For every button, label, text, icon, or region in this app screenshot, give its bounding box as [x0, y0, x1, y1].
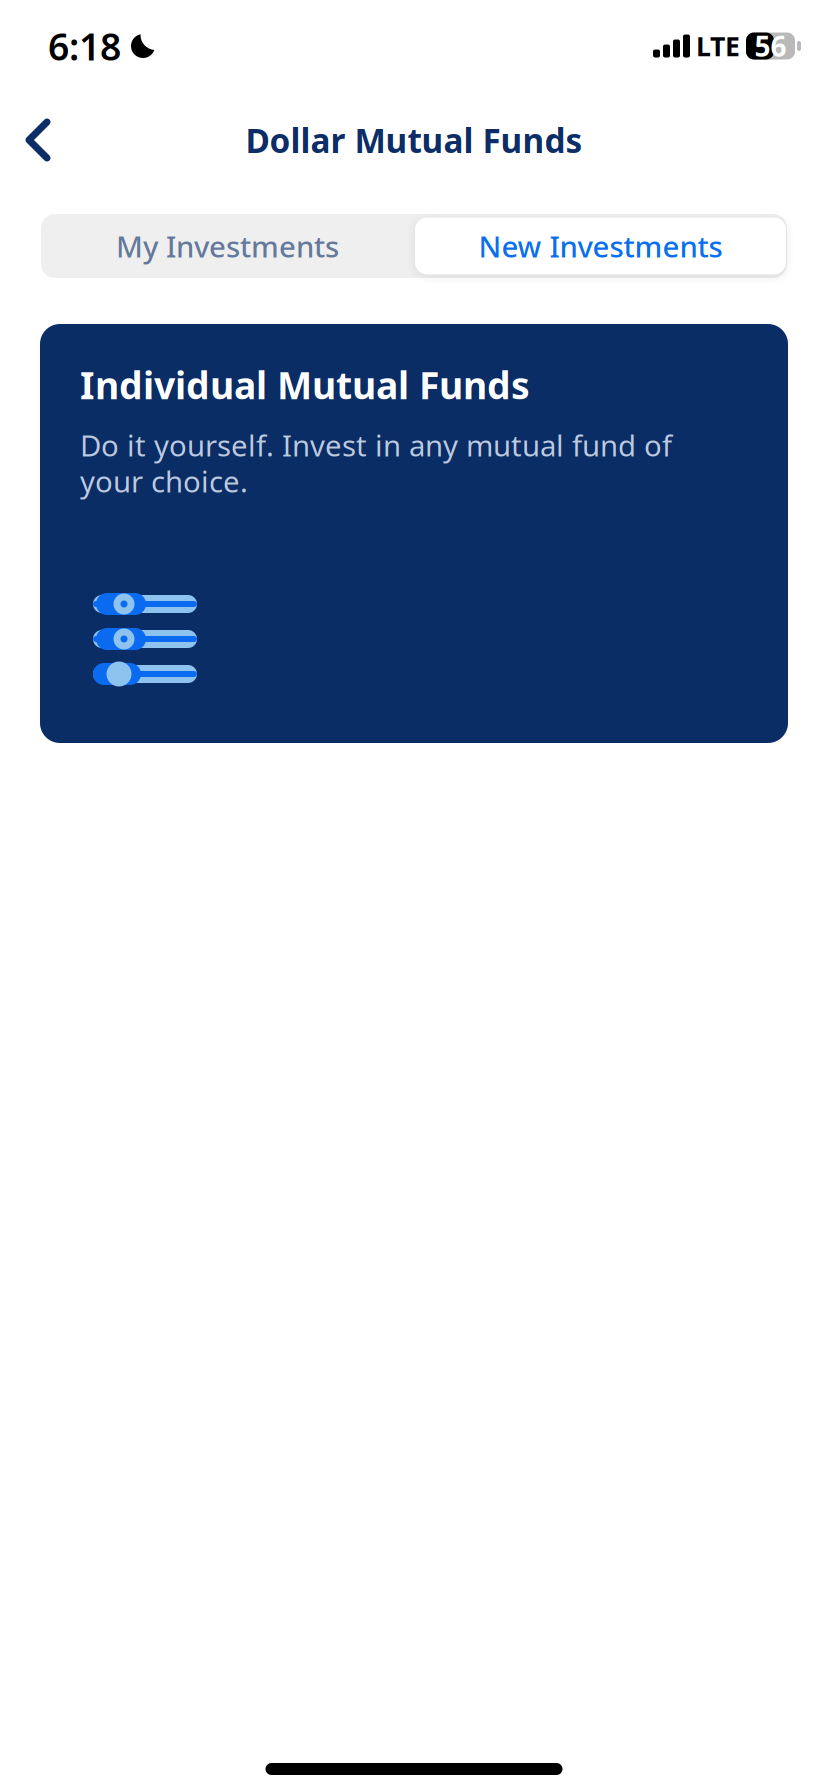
- button[interactable]: My Investments: [41, 217, 414, 275]
- button[interactable]: Individual Mutual Funds: [40, 324, 788, 743]
- staticText: 56: [754, 27, 786, 65]
- staticText: Dollar Mutual Funds: [245, 118, 582, 162]
- staticText: 6:18: [48, 21, 121, 71]
- button[interactable]: Back: [8, 110, 68, 170]
- staticText: LTE: [696, 28, 740, 64]
- button[interactable]: New Investments: [414, 217, 787, 274]
- staticText: Individual Mutual Funds: [80, 360, 530, 410]
- staticText: New Investments: [478, 226, 722, 265]
- staticText: Do it yourself. Invest in any mutual fun…: [80, 426, 672, 500]
- staticText: My Investments: [116, 226, 339, 265]
